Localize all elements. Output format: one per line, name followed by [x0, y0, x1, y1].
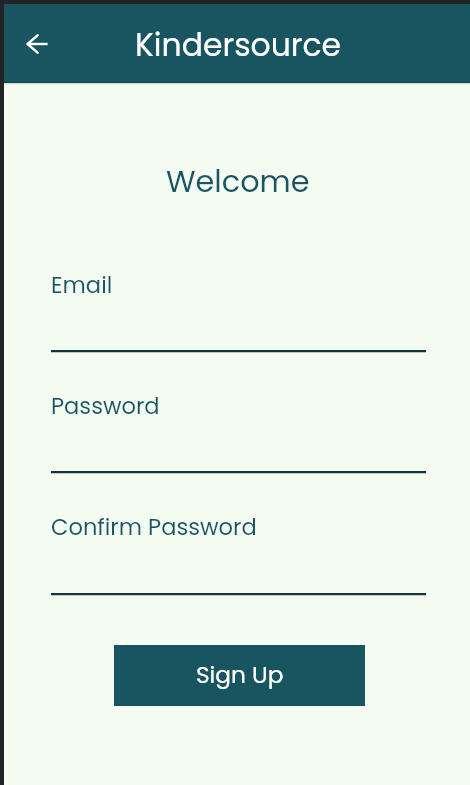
- button[interactable]: Confirm Password: [51, 511, 426, 595]
- staticText: Kindersource: [135, 23, 342, 67]
- staticText: Welcome: [166, 160, 310, 202]
- button[interactable]: Back: [15, 22, 59, 66]
- staticText: Sign Up: [196, 659, 284, 691]
- staticText: Email: [51, 269, 113, 301]
- staticText: Password: [51, 390, 160, 422]
- button[interactable]: Email: [51, 269, 426, 352]
- button[interactable]: Sign Up: [114, 645, 365, 706]
- staticText: Confirm Password: [51, 511, 257, 543]
- button[interactable]: Password: [51, 390, 426, 473]
